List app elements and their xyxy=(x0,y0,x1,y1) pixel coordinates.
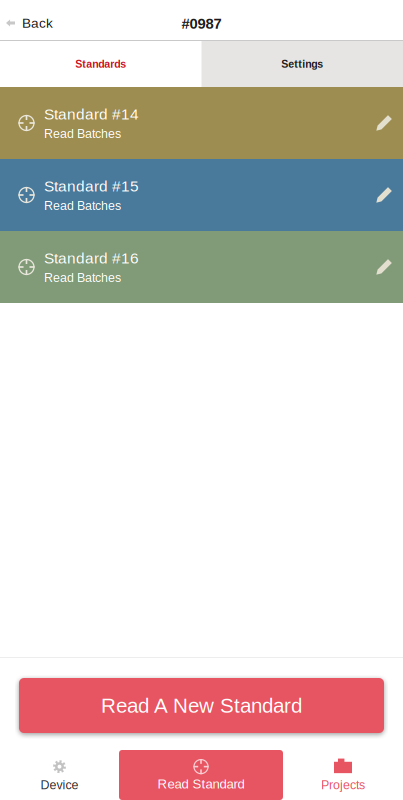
staticText: Settings xyxy=(281,58,323,70)
staticText: Standard #15 xyxy=(44,177,139,195)
staticText: Device xyxy=(40,778,78,792)
staticText: Read Batches xyxy=(44,271,121,285)
staticText: Standard #16 xyxy=(44,249,139,267)
button[interactable]: Standard #16 xyxy=(0,231,403,303)
button[interactable]: Projects xyxy=(283,750,403,800)
staticText: Read A New Standard xyxy=(101,694,302,717)
button[interactable]: Standards xyxy=(0,41,201,87)
staticText: Read Standard xyxy=(157,777,244,791)
button[interactable]: Standard #15 xyxy=(0,159,403,231)
staticText: Back xyxy=(22,15,53,31)
staticText: #0987 xyxy=(181,15,221,32)
staticText: Read Batches xyxy=(44,127,121,141)
staticText: Projects xyxy=(321,778,365,792)
button[interactable]: Settings xyxy=(201,41,403,87)
staticText: Standards xyxy=(75,58,126,70)
button[interactable]: Read Standard xyxy=(119,750,283,800)
button[interactable]: Standard #14 xyxy=(0,87,403,159)
button[interactable]: Back xyxy=(0,4,65,36)
button[interactable]: Read A New Standard xyxy=(19,678,384,733)
staticText: Read Batches xyxy=(44,199,121,213)
button[interactable]: Device xyxy=(0,750,119,800)
staticText: Standard #14 xyxy=(44,105,139,123)
